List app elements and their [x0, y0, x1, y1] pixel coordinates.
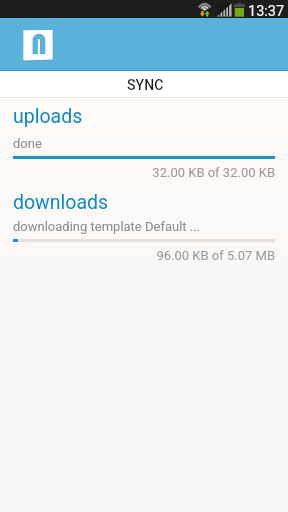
staticText: 96.00 KB of 5.07 MB — [0, 248, 275, 263]
button[interactable]: uploads — [13, 105, 83, 128]
staticText: 13:37 — [248, 3, 285, 20]
button[interactable]: App logo — [18, 25, 58, 65]
staticText: SYNC — [127, 77, 164, 93]
staticText: 32.00 KB of 32.00 KB — [0, 165, 275, 180]
button[interactable]: SYNC — [0, 71, 288, 97]
button[interactable]: downloads — [13, 191, 109, 214]
staticText: downloads — [13, 191, 109, 214]
staticText: downloading template Default ... — [13, 219, 201, 234]
staticText: uploads — [13, 105, 83, 128]
staticText: done — [13, 136, 42, 151]
